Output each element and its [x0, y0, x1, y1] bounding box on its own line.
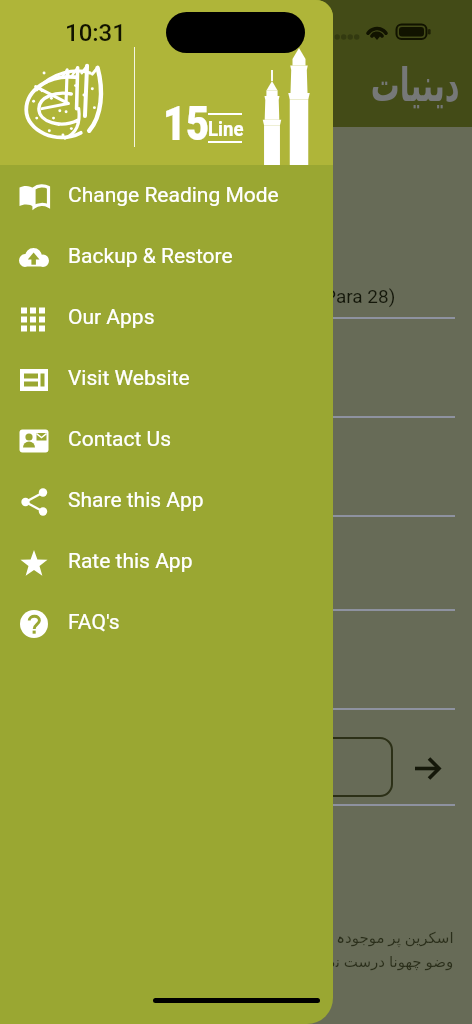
other: Rate this App	[19, 548, 49, 578]
other: FAQ's	[19, 609, 49, 639]
staticText: Line	[208, 117, 244, 140]
other: Contact Us	[19, 426, 49, 456]
staticText: Para 28)	[324, 285, 396, 307]
staticText: FAQ's	[68, 610, 120, 635]
staticText: Contact Us	[68, 427, 172, 452]
staticText: 10:31	[65, 19, 126, 47]
staticText: دینیات	[371, 58, 460, 113]
staticText: وضو چھونا درست نہیں	[311, 951, 454, 971]
button[interactable]: Share this App	[0, 471, 333, 532]
staticText: Rate this App	[68, 549, 193, 574]
button[interactable]: Our Apps	[0, 288, 333, 349]
staticText: Backup & Restore	[68, 244, 233, 269]
other: Visit Website	[19, 365, 49, 395]
button[interactable]: Rate this App	[0, 532, 333, 593]
button[interactable]: Backup & Restore	[0, 227, 333, 288]
other: Backup & Restore	[19, 243, 49, 273]
button[interactable]: Contact Us	[0, 410, 333, 471]
staticText: Change Reading Mode	[68, 183, 279, 208]
staticText: اسکرین پر موجودہ قرآنی	[296, 927, 454, 947]
other: Change Reading Mode	[19, 182, 49, 212]
button[interactable]: Visit Website	[0, 349, 333, 410]
other: Share this App	[19, 487, 49, 517]
button[interactable]: Change Reading Mode	[0, 166, 333, 227]
button[interactable]: FAQ's	[0, 593, 333, 654]
staticText: Our Apps	[68, 305, 155, 330]
staticText: Share this App	[68, 488, 204, 513]
other: Al Quran Al Kareem	[21, 51, 107, 137]
other: Our Apps	[19, 304, 49, 334]
staticText: Visit Website	[68, 366, 190, 391]
staticText: 15	[163, 95, 209, 145]
